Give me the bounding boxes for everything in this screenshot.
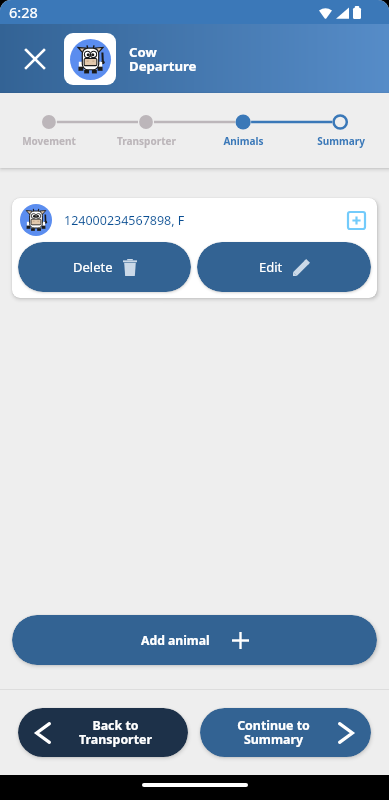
staticText: Summary — [317, 134, 365, 148]
staticText: Back to Transporter — [79, 717, 152, 748]
staticText: Movement — [22, 134, 76, 148]
button[interactable]: Continue to Summary — [200, 708, 371, 757]
button[interactable]: Close — [14, 39, 54, 79]
button[interactable]: Edit — [197, 242, 371, 292]
staticText: Animals — [223, 134, 264, 148]
staticText: 6:28 — [9, 2, 38, 22]
staticText: Add animal — [141, 632, 210, 649]
button[interactable]: Add animal — [12, 615, 377, 665]
button[interactable]: Back to Transporter — [18, 708, 188, 757]
staticText: 124000234567898, F — [64, 212, 185, 229]
staticText: Continue to Summary — [237, 717, 310, 748]
staticText: Transporter — [117, 134, 176, 148]
staticText: Edit — [259, 258, 283, 276]
button[interactable]: Add animal to list — [344, 208, 368, 232]
staticText: Cow Departure — [129, 43, 197, 75]
staticText: Delete — [73, 258, 113, 276]
button[interactable]: Delete — [18, 242, 191, 292]
